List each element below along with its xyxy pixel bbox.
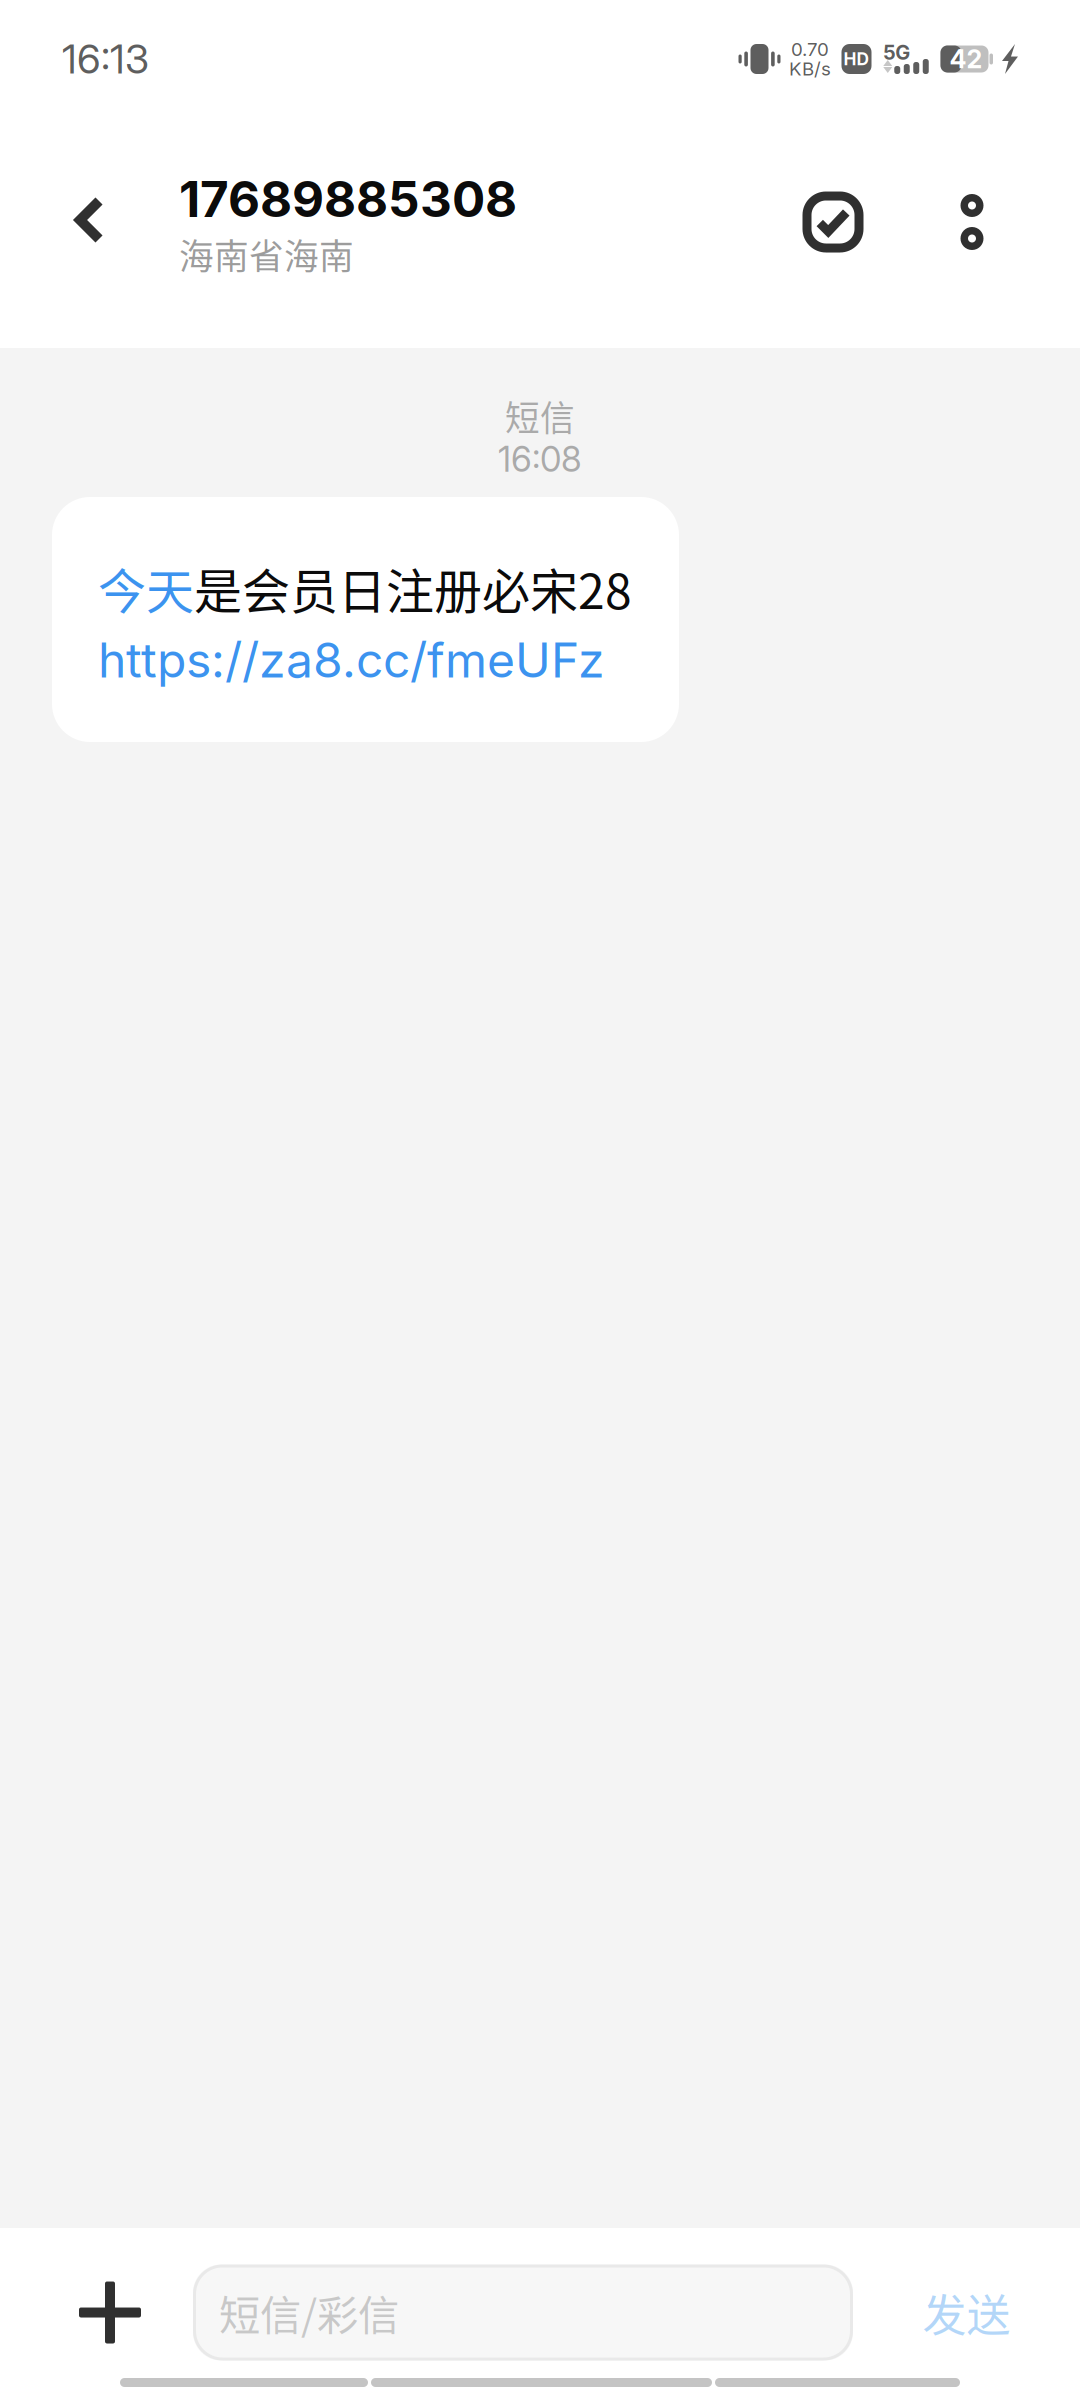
staticText: 16:08	[498, 438, 582, 480]
staticText: 短信	[505, 391, 575, 441]
button[interactable]: 短信/彩信	[193, 2264, 853, 2360]
staticText: 17689885308	[179, 169, 517, 229]
staticText: 是会员日注册必宋28	[194, 553, 632, 623]
button[interactable]: 发送	[853, 2249, 1080, 2376]
staticText: 短信/彩信	[219, 2283, 399, 2342]
staticText: 0.70	[791, 38, 829, 60]
staticText: 海南省海南	[179, 229, 354, 279]
staticText: 发送	[922, 2281, 1010, 2344]
staticText: KB/s	[789, 57, 831, 80]
button[interactable]: More options	[912, 136, 1032, 314]
button[interactable]: Select messages	[754, 136, 912, 314]
staticText: 今天	[98, 553, 194, 623]
staticText: 42	[949, 44, 982, 74]
staticText: HD	[843, 48, 869, 69]
staticText: 16:13	[62, 35, 149, 83]
staticText: 5G	[883, 40, 910, 65]
staticText: https://za8.cc/fmeUFz	[98, 631, 605, 689]
button[interactable]: Add attachment	[0, 2249, 193, 2376]
button[interactable]: Back	[0, 136, 179, 314]
